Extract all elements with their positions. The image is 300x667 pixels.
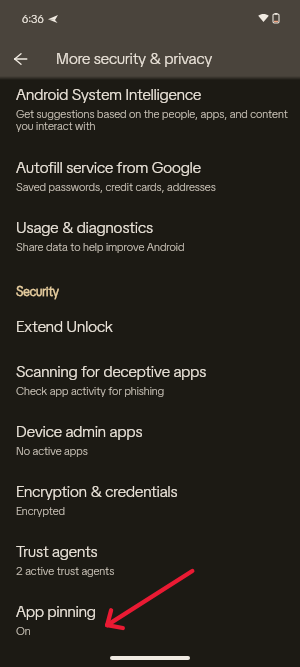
staticText: Encryption & credentials [16,481,178,502]
staticText: Share data to help improve Android [16,239,185,254]
button[interactable]: Scanning for deceptive apps [0,356,300,416]
staticText: App pinning [16,601,96,622]
staticText: Extend Unlock [16,316,113,337]
staticText: Scanning for deceptive apps [16,361,207,382]
staticText: More security & privacy [56,48,213,69]
button[interactable]: Device admin apps [0,416,300,476]
staticText: Get suggestions based on the people, app… [16,106,300,133]
staticText: Encrypted [16,503,66,518]
button[interactable]: App pinning [0,596,300,656]
staticText: Check app activity for phishing [16,383,165,398]
button[interactable]: Usage & diagnostics [0,212,300,272]
button[interactable]: Navigate up [3,41,38,76]
staticText: No active apps [16,443,88,458]
staticText: Security [16,283,59,299]
staticText: On [16,623,31,638]
button[interactable]: Encryption & credentials [0,476,300,536]
button[interactable]: Autofill service from Google [0,152,300,212]
staticText: 2 active trust agents [16,563,115,578]
button[interactable]: Extend Unlock [0,311,300,356]
staticText: Saved passwords, credit cards, addresses [16,179,216,194]
staticText: Trust agents [16,541,98,562]
staticText: Device admin apps [16,421,143,442]
staticText: 6:36 [22,12,44,26]
staticText: Usage & diagnostics [16,217,153,238]
button[interactable]: Android System Intelligence [0,79,300,152]
staticText: Autofill service from Google [16,157,201,178]
staticText: Android System Intelligence [16,84,202,105]
button[interactable]: Trust agents [0,536,300,596]
